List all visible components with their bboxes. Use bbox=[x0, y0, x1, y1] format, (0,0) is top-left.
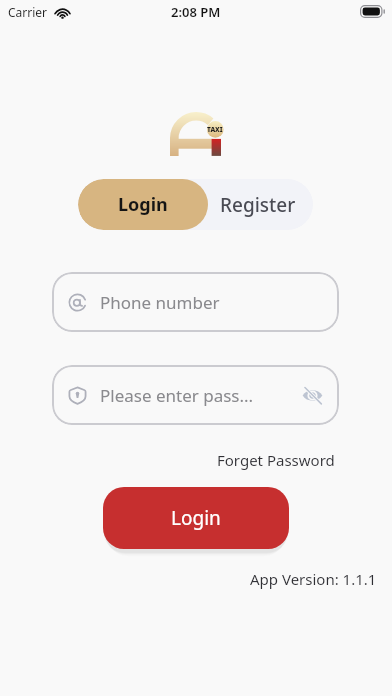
staticText: Register bbox=[220, 192, 296, 218]
button[interactable]: Phone number bbox=[52, 272, 339, 332]
staticText: 2:08 PM bbox=[171, 3, 221, 21]
staticText: Phone number bbox=[100, 291, 220, 314]
staticText: Login bbox=[171, 505, 221, 531]
staticText: Login bbox=[118, 192, 168, 217]
staticText: Please enter pass... bbox=[100, 384, 254, 407]
staticText: Forget Password bbox=[217, 450, 335, 470]
staticText: Carrier bbox=[8, 4, 48, 20]
button[interactable]: Show password bbox=[302, 385, 323, 406]
staticText: TAXI bbox=[207, 125, 223, 134]
button[interactable]: Login bbox=[78, 179, 208, 230]
button[interactable]: Please enter pass... bbox=[52, 365, 339, 425]
button[interactable]: Register bbox=[208, 179, 313, 230]
button[interactable]: Forget Password bbox=[217, 450, 335, 470]
staticText: App Version: 1.1.1 bbox=[250, 569, 377, 589]
button[interactable]: Login bbox=[103, 487, 289, 549]
